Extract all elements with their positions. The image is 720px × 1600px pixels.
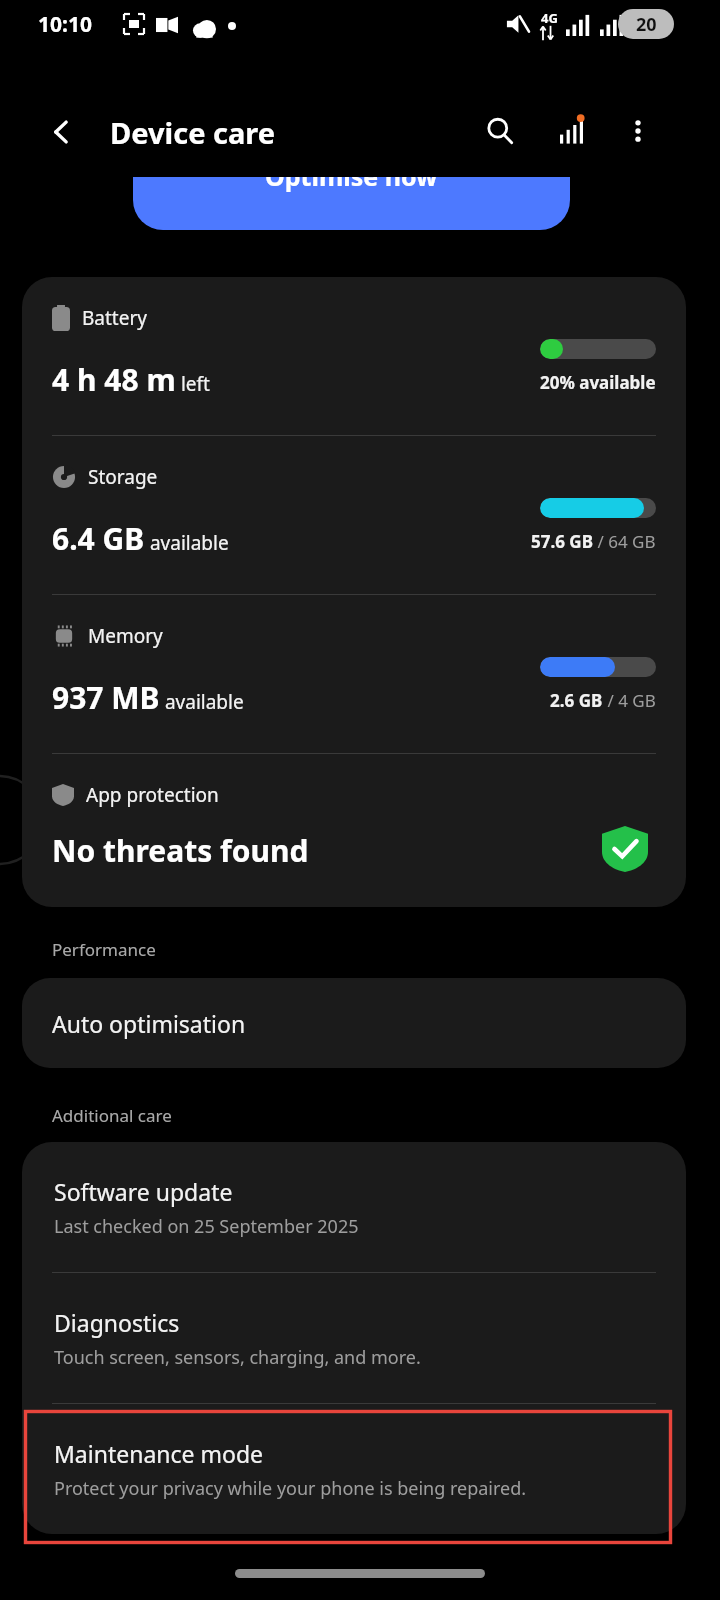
staticText: left [176, 371, 210, 397]
staticText: Software update [54, 1176, 233, 1207]
staticText: available [145, 530, 229, 556]
button[interactable]: Battery [22, 277, 686, 435]
staticText: 937 MB [52, 677, 160, 718]
staticText: 4 h 48 m [52, 359, 176, 400]
staticText: Optimise now [265, 177, 438, 193]
staticText: App protection [86, 782, 219, 808]
staticText: Memory [88, 623, 163, 649]
button[interactable]: Memory [22, 595, 686, 753]
button[interactable]: Software update [22, 1142, 686, 1272]
staticText: 2.6 GB [550, 689, 603, 712]
staticText: Auto optimisation [52, 1008, 246, 1039]
staticText: Additional care [52, 1104, 172, 1127]
button[interactable]: Storage [22, 436, 686, 594]
staticText: Device care [110, 113, 276, 152]
staticText: 4G [541, 9, 558, 27]
staticText: Touch screen, sensors, charging, and mor… [54, 1345, 421, 1370]
button[interactable]: Usage statistics [548, 107, 596, 155]
staticText: 20 [636, 12, 657, 37]
staticText: 57.6 GB [531, 530, 593, 553]
staticText: 10:10 [38, 10, 92, 39]
button[interactable]: Diagnostics [22, 1273, 686, 1403]
button[interactable]: Auto optimisation [22, 978, 686, 1068]
button[interactable]: More options [614, 107, 662, 155]
button[interactable]: App protection [22, 754, 686, 907]
staticText: / 4 GB [603, 689, 656, 712]
staticText: Storage [88, 464, 158, 490]
button[interactable]: Maintenance mode [22, 1404, 686, 1534]
staticText: / 64 GB [593, 530, 656, 553]
staticText: 6.4 GB [52, 518, 145, 559]
staticText: Maintenance mode [54, 1438, 264, 1469]
button[interactable]: Optimise now [133, 177, 570, 230]
staticText: 20% available [540, 371, 656, 394]
button[interactable]: Search [476, 107, 524, 155]
staticText: Diagnostics [54, 1307, 180, 1338]
staticText: No threats found [52, 830, 309, 871]
staticText: Last checked on 25 September 2025 [54, 1214, 359, 1239]
staticText: Protect your privacy while your phone is… [54, 1476, 527, 1501]
button[interactable]: Back [38, 108, 86, 156]
staticText: Performance [52, 938, 156, 961]
staticText: Battery [82, 305, 147, 331]
staticText: available [160, 689, 244, 715]
